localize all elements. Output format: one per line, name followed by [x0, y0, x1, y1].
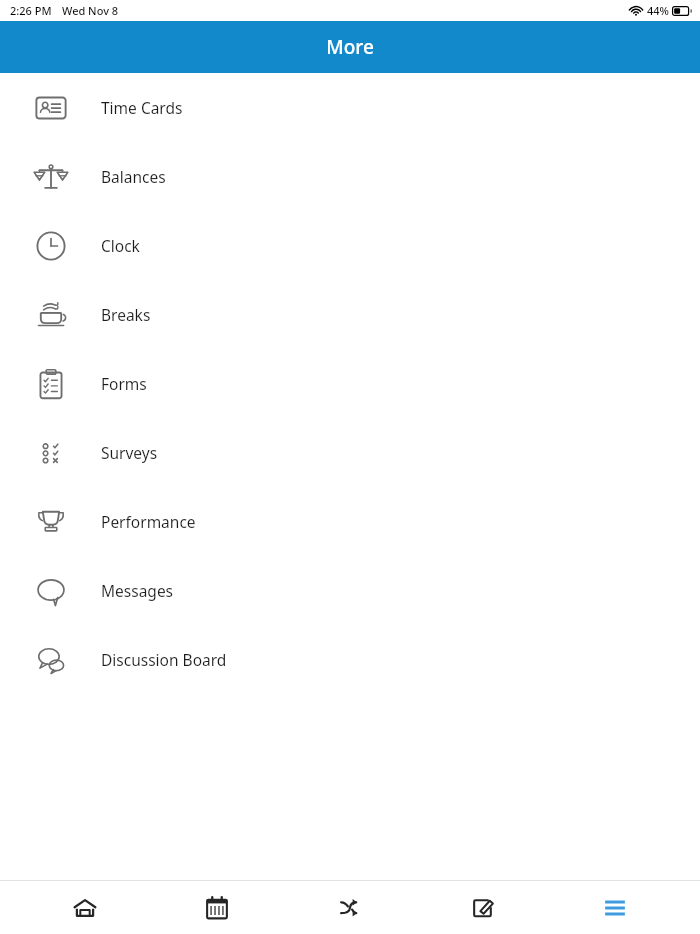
button[interactable]: Time Cards — [0, 73, 700, 142]
staticText: Forms — [101, 373, 147, 394]
button[interactable]: Clock — [0, 211, 700, 280]
staticText: Balances — [101, 166, 166, 187]
staticText: Discussion Board — [101, 649, 227, 670]
staticText: Clock — [101, 235, 140, 256]
button[interactable]: Messages — [0, 556, 700, 625]
button[interactable]: Schedule — [169, 881, 265, 934]
staticText: More — [326, 34, 374, 60]
staticText: Performance — [101, 511, 196, 532]
button[interactable]: Surveys — [0, 418, 700, 487]
staticText: Wed Nov 8 — [62, 3, 119, 18]
staticText: Messages — [101, 580, 174, 601]
button[interactable]: Balances — [0, 142, 700, 211]
staticText: 44% — [647, 3, 669, 18]
staticText: Surveys — [101, 442, 158, 463]
button[interactable]: Discussion Board — [0, 625, 700, 694]
button[interactable]: More — [567, 881, 663, 934]
staticText: Breaks — [101, 304, 151, 325]
button[interactable]: Forms — [0, 349, 700, 418]
button[interactable]: Swap shifts — [302, 881, 398, 934]
button[interactable]: Home — [37, 881, 133, 934]
button[interactable]: Requests — [435, 881, 531, 934]
staticText: 2:26 PM — [10, 3, 52, 18]
button[interactable]: Performance — [0, 487, 700, 556]
button[interactable]: Breaks — [0, 280, 700, 349]
staticText: Time Cards — [101, 97, 183, 118]
